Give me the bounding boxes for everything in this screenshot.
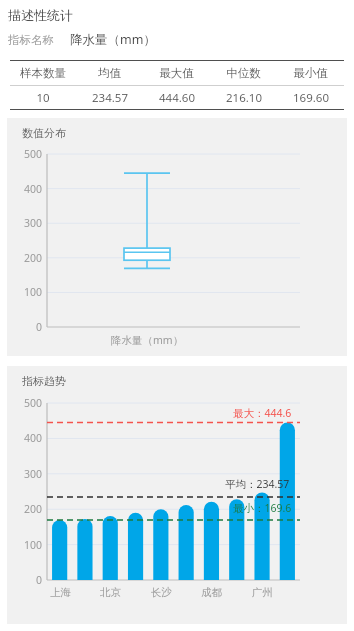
- staticText: 降水量（mm）: [111, 333, 184, 347]
- button[interactable]: 样本数量: [10, 60, 344, 110]
- staticText: 广州: [252, 586, 273, 599]
- button[interactable]: 指标趋势柱状图: [7, 366, 347, 624]
- staticText: 500: [24, 396, 43, 410]
- staticText: 200: [24, 502, 43, 516]
- staticText: 300: [24, 467, 43, 481]
- staticText: 0: [36, 573, 43, 587]
- staticText: 0: [36, 320, 43, 334]
- staticText: 234.57: [92, 90, 128, 106]
- staticText: 上海: [50, 586, 71, 599]
- staticText: 400: [24, 182, 43, 196]
- staticText: 成都: [201, 586, 222, 599]
- staticText: 北京: [100, 586, 121, 599]
- staticText: 指标趋势: [22, 374, 66, 388]
- staticText: 216.10: [226, 90, 262, 106]
- staticText: 样本数量: [20, 66, 66, 80]
- staticText: 最大值: [159, 66, 194, 80]
- button[interactable]: 数值分布箱线图: [7, 118, 347, 356]
- staticText: 10: [36, 90, 50, 106]
- staticText: 400: [24, 431, 43, 445]
- staticText: 指标名称: [8, 33, 54, 47]
- staticText: 均值: [98, 66, 121, 80]
- staticText: 500: [24, 147, 43, 161]
- staticText: 描述性统计: [8, 7, 73, 23]
- staticText: 降水量（mm）: [70, 31, 156, 48]
- staticText: 169.60: [293, 90, 329, 106]
- staticText: 100: [24, 285, 43, 299]
- staticText: 300: [24, 216, 43, 230]
- staticText: 长沙: [151, 586, 172, 599]
- staticText: 最小值: [293, 66, 328, 80]
- staticText: 数值分布: [22, 126, 66, 140]
- staticText: 平均：234.57: [225, 477, 290, 491]
- staticText: 100: [24, 538, 43, 552]
- staticText: 200: [24, 251, 43, 265]
- staticText: 最大：444.6: [233, 406, 292, 420]
- staticText: 最小：169.6: [233, 501, 292, 515]
- staticText: 444.60: [159, 90, 195, 106]
- staticText: 中位数: [226, 66, 261, 80]
